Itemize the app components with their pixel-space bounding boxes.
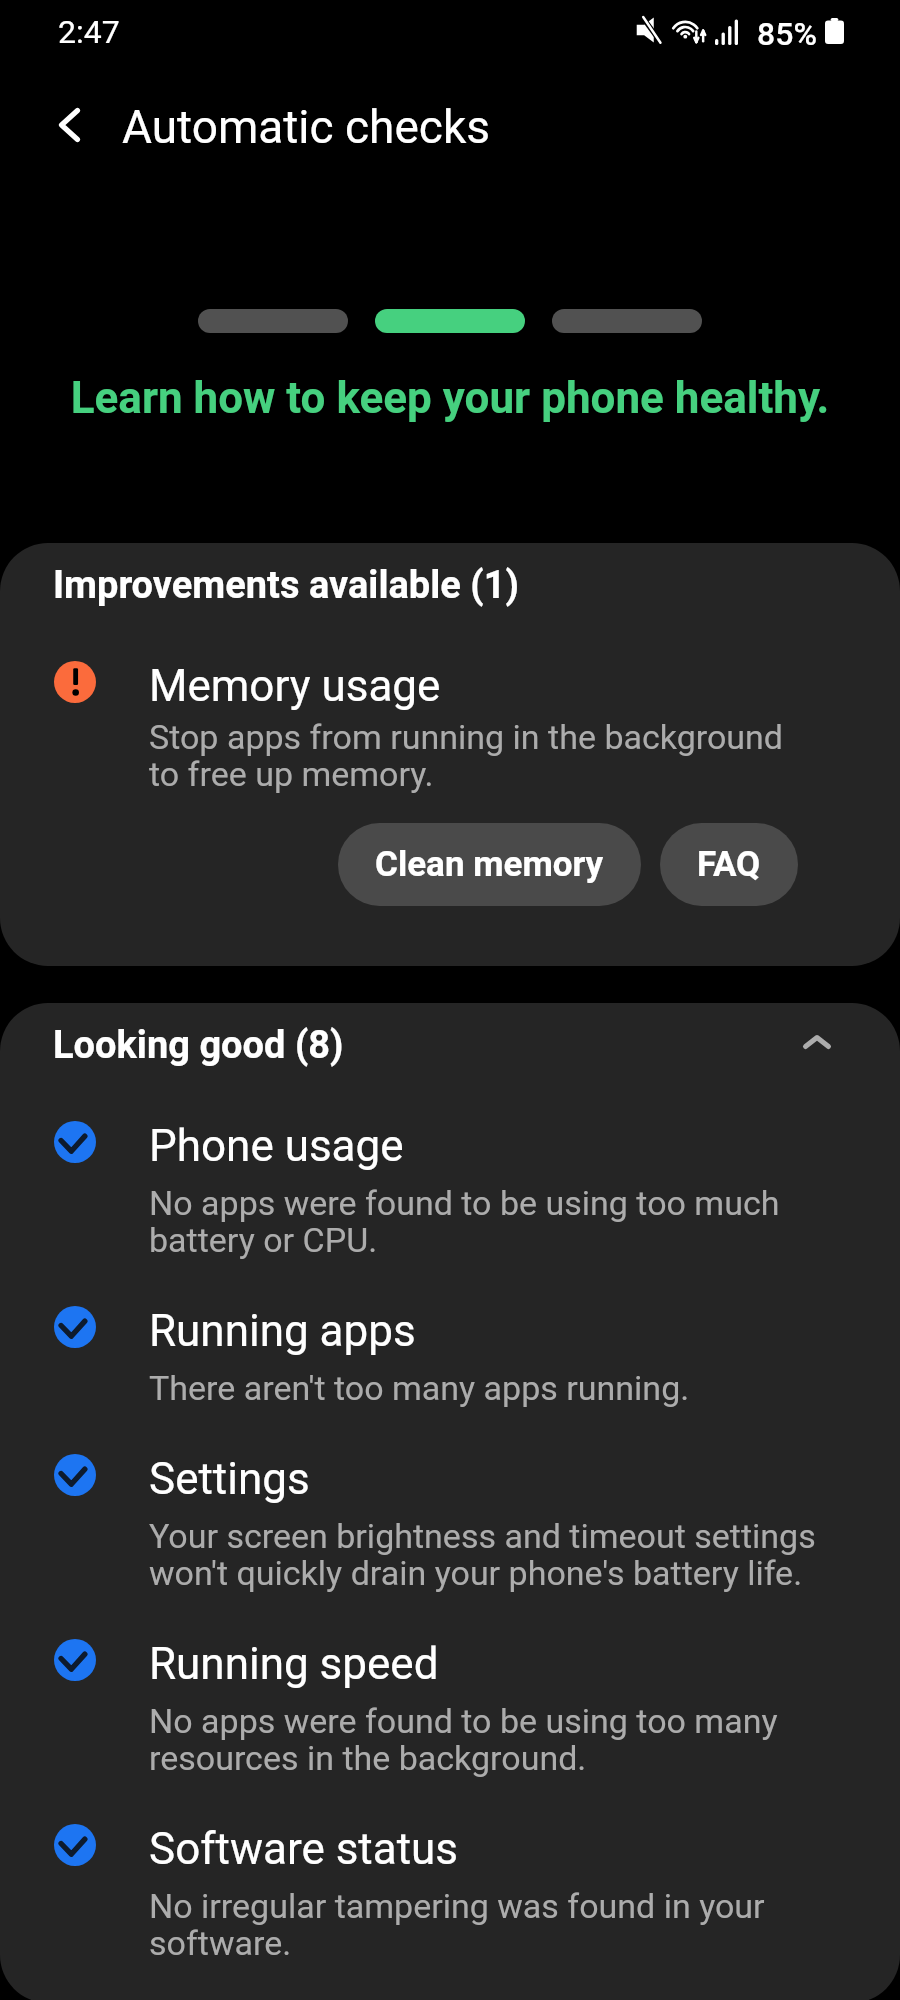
button[interactable]: Running apps xyxy=(0,1305,900,1408)
staticText: Running apps xyxy=(149,1305,416,1357)
staticText: Settings xyxy=(149,1453,310,1505)
staticText: No irregular tampering was found in your… xyxy=(149,1886,819,1963)
button[interactable]: Clean memory xyxy=(338,823,641,906)
staticText: Running speed xyxy=(149,1638,439,1690)
staticText: Your screen brightness and timeout setti… xyxy=(149,1516,819,1593)
button[interactable]: FAQ xyxy=(660,823,798,906)
staticText: No apps were found to be using too much … xyxy=(149,1183,819,1260)
button[interactable]: Running speed xyxy=(0,1638,900,1778)
button[interactable] xyxy=(375,309,525,333)
other: Collapse xyxy=(803,1035,831,1049)
button[interactable]: Settings xyxy=(0,1453,900,1593)
staticText: No apps were found to be using too many … xyxy=(149,1701,819,1778)
staticText: Stop apps from running in the background… xyxy=(149,717,819,794)
staticText: Phone usage xyxy=(149,1120,404,1172)
staticText: 2:47 xyxy=(58,13,120,51)
staticText: Clean memory xyxy=(375,844,604,885)
staticText: FAQ xyxy=(697,844,761,885)
button[interactable] xyxy=(198,309,348,333)
staticText: Looking good (8) xyxy=(53,1023,344,1068)
button[interactable] xyxy=(552,309,702,333)
staticText: Memory usage xyxy=(149,660,441,712)
staticText: Learn how to keep your phone healthy. xyxy=(0,372,900,424)
staticText: Software status xyxy=(149,1823,459,1875)
button[interactable]: Phone usage xyxy=(0,1120,900,1260)
staticText: Improvements available (1) xyxy=(53,563,519,608)
staticText: Automatic checks xyxy=(122,100,490,154)
button[interactable]: Software status xyxy=(0,1823,900,1963)
staticText: 85% xyxy=(757,15,817,53)
staticText: There aren't too many apps running. xyxy=(149,1368,690,1408)
button[interactable]: Back xyxy=(33,89,103,159)
button[interactable]: Memory usage xyxy=(0,660,900,794)
button[interactable]: Looking good (8) xyxy=(0,1023,900,1068)
